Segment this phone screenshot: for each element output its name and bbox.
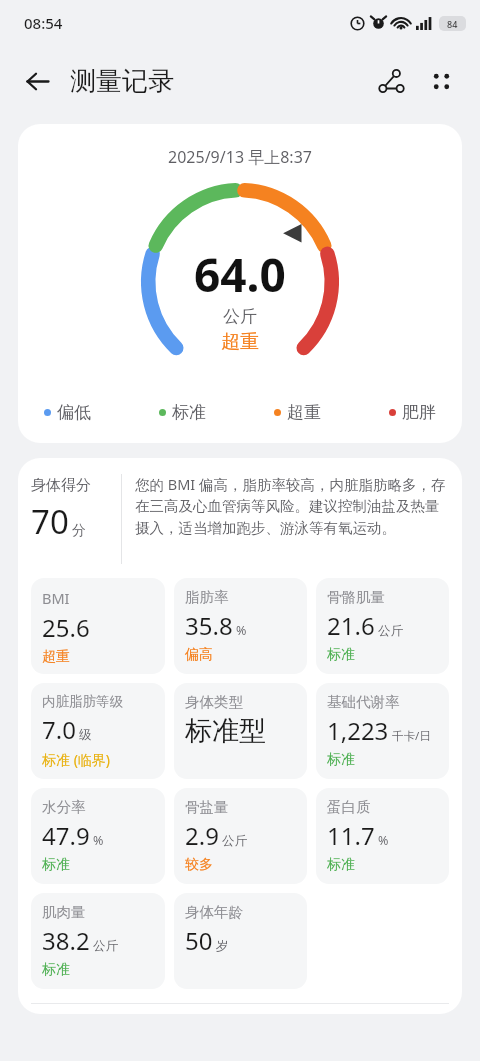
staticText: 公斤 (93, 938, 118, 954)
staticText: 38.2 (42, 924, 90, 957)
button[interactable]: 蛋白质 (316, 788, 449, 884)
staticText: 50 (185, 924, 213, 957)
staticText: 偏高 (185, 646, 213, 664)
staticText: 公斤 (378, 623, 403, 639)
button[interactable]: 水分率 (31, 788, 165, 884)
staticText: 超重 (42, 648, 70, 666)
button[interactable]: 标准 (159, 402, 206, 423)
staticText: % (93, 832, 104, 849)
button[interactable]: More options (416, 56, 466, 106)
staticText: 标准 (327, 856, 355, 874)
staticText: 测量记录 (70, 65, 174, 98)
button[interactable]: 骨骼肌量 (316, 578, 449, 674)
button[interactable]: 基础代谢率 (316, 683, 449, 779)
staticText: 您的 BMI 偏高，脂肪率较高，内脏脂肪略多，存在三高及心血管病等风险。建议控制… (135, 474, 449, 538)
staticText: 标准型 (185, 714, 266, 748)
staticText: 标准 (临界) (42, 750, 111, 769)
staticText: 超重 (287, 402, 321, 423)
staticText: 肥胖 (402, 402, 436, 423)
staticText: 蛋白质 (327, 798, 371, 816)
staticText: 千卡/日 (392, 728, 431, 744)
staticText: 骨骼肌量 (327, 588, 385, 606)
staticText: 2.9 (185, 819, 219, 852)
staticText: % (378, 832, 389, 849)
button[interactable]: 脂肪率 (174, 578, 307, 674)
staticText: 标准 (327, 646, 355, 664)
staticText: 水分率 (42, 798, 86, 816)
button[interactable]: 超重 (274, 402, 321, 423)
staticText: 1,223 (327, 714, 389, 747)
staticText: 标准 (327, 751, 355, 769)
staticText: 分 (72, 522, 86, 540)
staticText: 肌肉量 (42, 903, 86, 921)
staticText: 级 (79, 727, 92, 743)
staticText: 身体年龄 (185, 903, 243, 921)
staticText: 08:54 (24, 13, 63, 33)
staticText: 公斤 (222, 833, 247, 849)
button[interactable]: 肌肉量 (31, 893, 165, 989)
staticText: 84 (447, 18, 458, 30)
staticText: 64.0 (194, 243, 286, 306)
staticText: 11.7 (327, 819, 375, 852)
staticText: 基础代谢率 (327, 693, 400, 711)
button[interactable]: Share (366, 56, 416, 106)
staticText: 70 (31, 499, 69, 544)
button[interactable]: 2025/9/13 早上8:37 (18, 124, 462, 443)
staticText: 标准 (172, 402, 206, 423)
button[interactable]: Back (12, 56, 62, 106)
button[interactable]: 身体类型 (174, 683, 307, 779)
staticText: 骨盐量 (185, 798, 229, 816)
button[interactable]: 骨盐量 (174, 788, 307, 884)
staticText: 身体得分 (31, 476, 91, 495)
staticText: 21.6 (327, 609, 375, 642)
button[interactable]: 肥胖 (389, 402, 436, 423)
staticText: % (236, 622, 247, 639)
staticText: 35.8 (185, 609, 233, 642)
staticText: 25.6 (42, 611, 90, 644)
staticText: 标准 (42, 961, 70, 979)
button[interactable]: 内脏脂肪等级 (31, 683, 165, 779)
staticText: 岁 (216, 938, 229, 954)
staticText: BMI (42, 588, 70, 608)
staticText: 2025/9/13 早上8:37 (18, 146, 462, 168)
staticText: 47.9 (42, 819, 90, 852)
staticText: 身体类型 (185, 693, 243, 711)
staticText: 7.0 (42, 713, 76, 746)
staticText: 标准 (42, 856, 70, 874)
staticText: 较多 (185, 856, 213, 874)
staticText: 公斤 (223, 306, 257, 327)
button[interactable]: 偏低 (44, 402, 91, 423)
button[interactable]: 身体得分 (31, 474, 449, 564)
button[interactable]: BMI (31, 578, 165, 674)
staticText: 超重 (221, 330, 259, 354)
staticText: 脂肪率 (185, 588, 229, 606)
staticText: 偏低 (57, 402, 91, 423)
staticText: 内脏脂肪等级 (42, 693, 123, 710)
button[interactable]: 身体年龄 (174, 893, 307, 989)
